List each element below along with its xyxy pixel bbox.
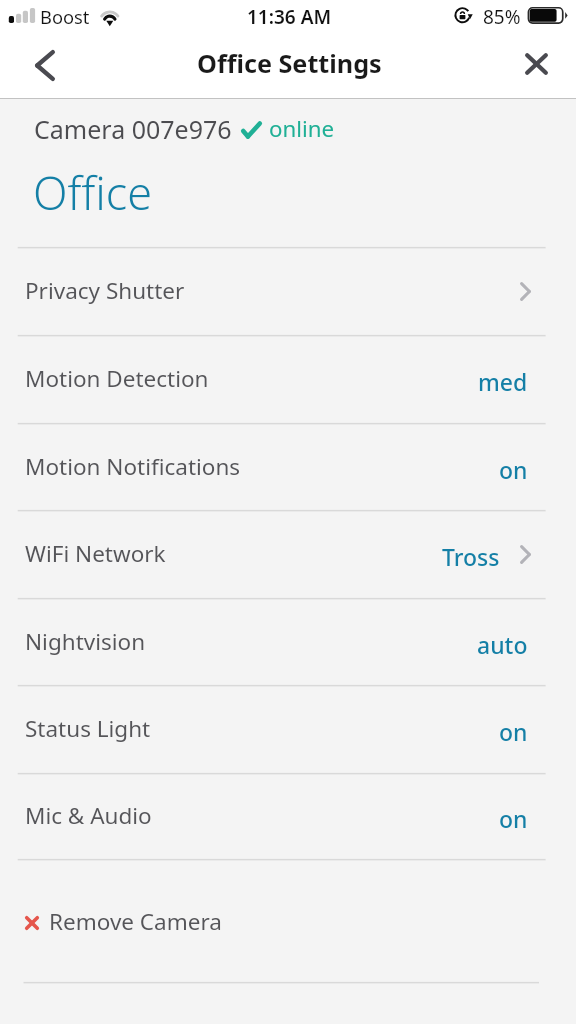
- staticText: WiFi Network: [25, 538, 166, 569]
- staticText: online: [269, 113, 335, 143]
- button[interactable]: Motion Detection: [0, 336, 576, 423]
- staticText: med: [478, 366, 528, 397]
- staticText: 85%: [483, 4, 521, 30]
- staticText: Office Settings: [197, 46, 382, 80]
- staticText: Office: [33, 162, 153, 223]
- staticText: Camera 007e976: [34, 112, 232, 146]
- button[interactable]: Close: [514, 31, 576, 98]
- staticText: Status Light: [25, 713, 151, 744]
- staticText: Boost: [40, 4, 90, 29]
- other: Online: [241, 121, 262, 139]
- button[interactable]: Nightvision: [0, 599, 576, 685]
- staticText: Mic & Audio: [25, 800, 152, 831]
- staticText: on: [499, 803, 528, 834]
- button[interactable]: Mic & Audio: [0, 774, 576, 859]
- staticText: Remove Camera: [49, 906, 222, 937]
- staticText: on: [499, 454, 528, 485]
- staticText: 11:36 AM: [247, 4, 332, 30]
- staticText: Nightvision: [25, 626, 146, 657]
- button[interactable]: WiFi Network: [0, 511, 576, 598]
- staticText: on: [499, 716, 528, 747]
- button[interactable]: Motion Notifications: [0, 424, 576, 510]
- staticText: Tross: [442, 541, 500, 572]
- button[interactable]: Back: [14, 31, 76, 98]
- button[interactable]: Status Light: [0, 686, 576, 773]
- staticText: auto: [477, 629, 528, 660]
- button[interactable]: Privacy Shutter: [0, 248, 576, 335]
- staticText: Privacy Shutter: [25, 275, 185, 306]
- staticText: Motion Detection: [25, 363, 209, 394]
- staticText: Motion Notifications: [25, 451, 241, 482]
- button[interactable]: Remove Camera: [0, 860, 576, 982]
